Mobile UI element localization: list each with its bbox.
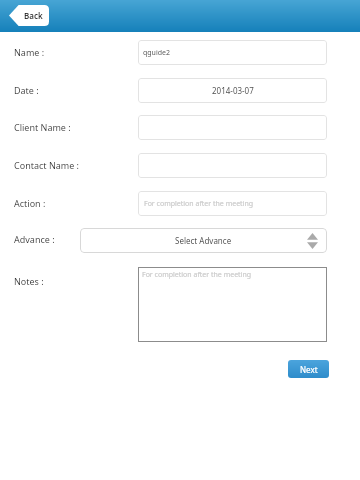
button[interactable]: 2014-03-07 <box>138 78 327 103</box>
staticText: Advance : <box>14 233 55 245</box>
button[interactable]: Back <box>9 5 49 26</box>
staticText: Date : <box>14 84 39 96</box>
button[interactable]: Select advance <box>307 233 318 249</box>
staticText: Name : <box>14 46 45 58</box>
staticText: For completion after the meeting <box>144 199 254 209</box>
staticText: Next <box>300 364 318 375</box>
button[interactable]: qguide2 <box>138 40 327 65</box>
button[interactable]: Select Advance <box>80 228 327 253</box>
button[interactable]: For completion after the meeting <box>138 267 327 342</box>
staticText: Select Advance <box>175 235 232 246</box>
staticText: Action : <box>14 197 46 209</box>
staticText: For completion after the meeting <box>142 270 252 280</box>
staticText: Client Name : <box>14 121 71 133</box>
staticText: 2014-03-07 <box>212 85 254 96</box>
button[interactable]: For completion after the meeting <box>138 191 327 216</box>
staticText: qguide2 <box>143 48 170 58</box>
button[interactable] <box>138 153 327 178</box>
staticText: Notes : <box>14 275 44 287</box>
button[interactable] <box>138 115 327 140</box>
button[interactable]: Next <box>288 360 329 378</box>
staticText: Contact Name : <box>14 159 80 171</box>
staticText: Back <box>24 10 43 21</box>
